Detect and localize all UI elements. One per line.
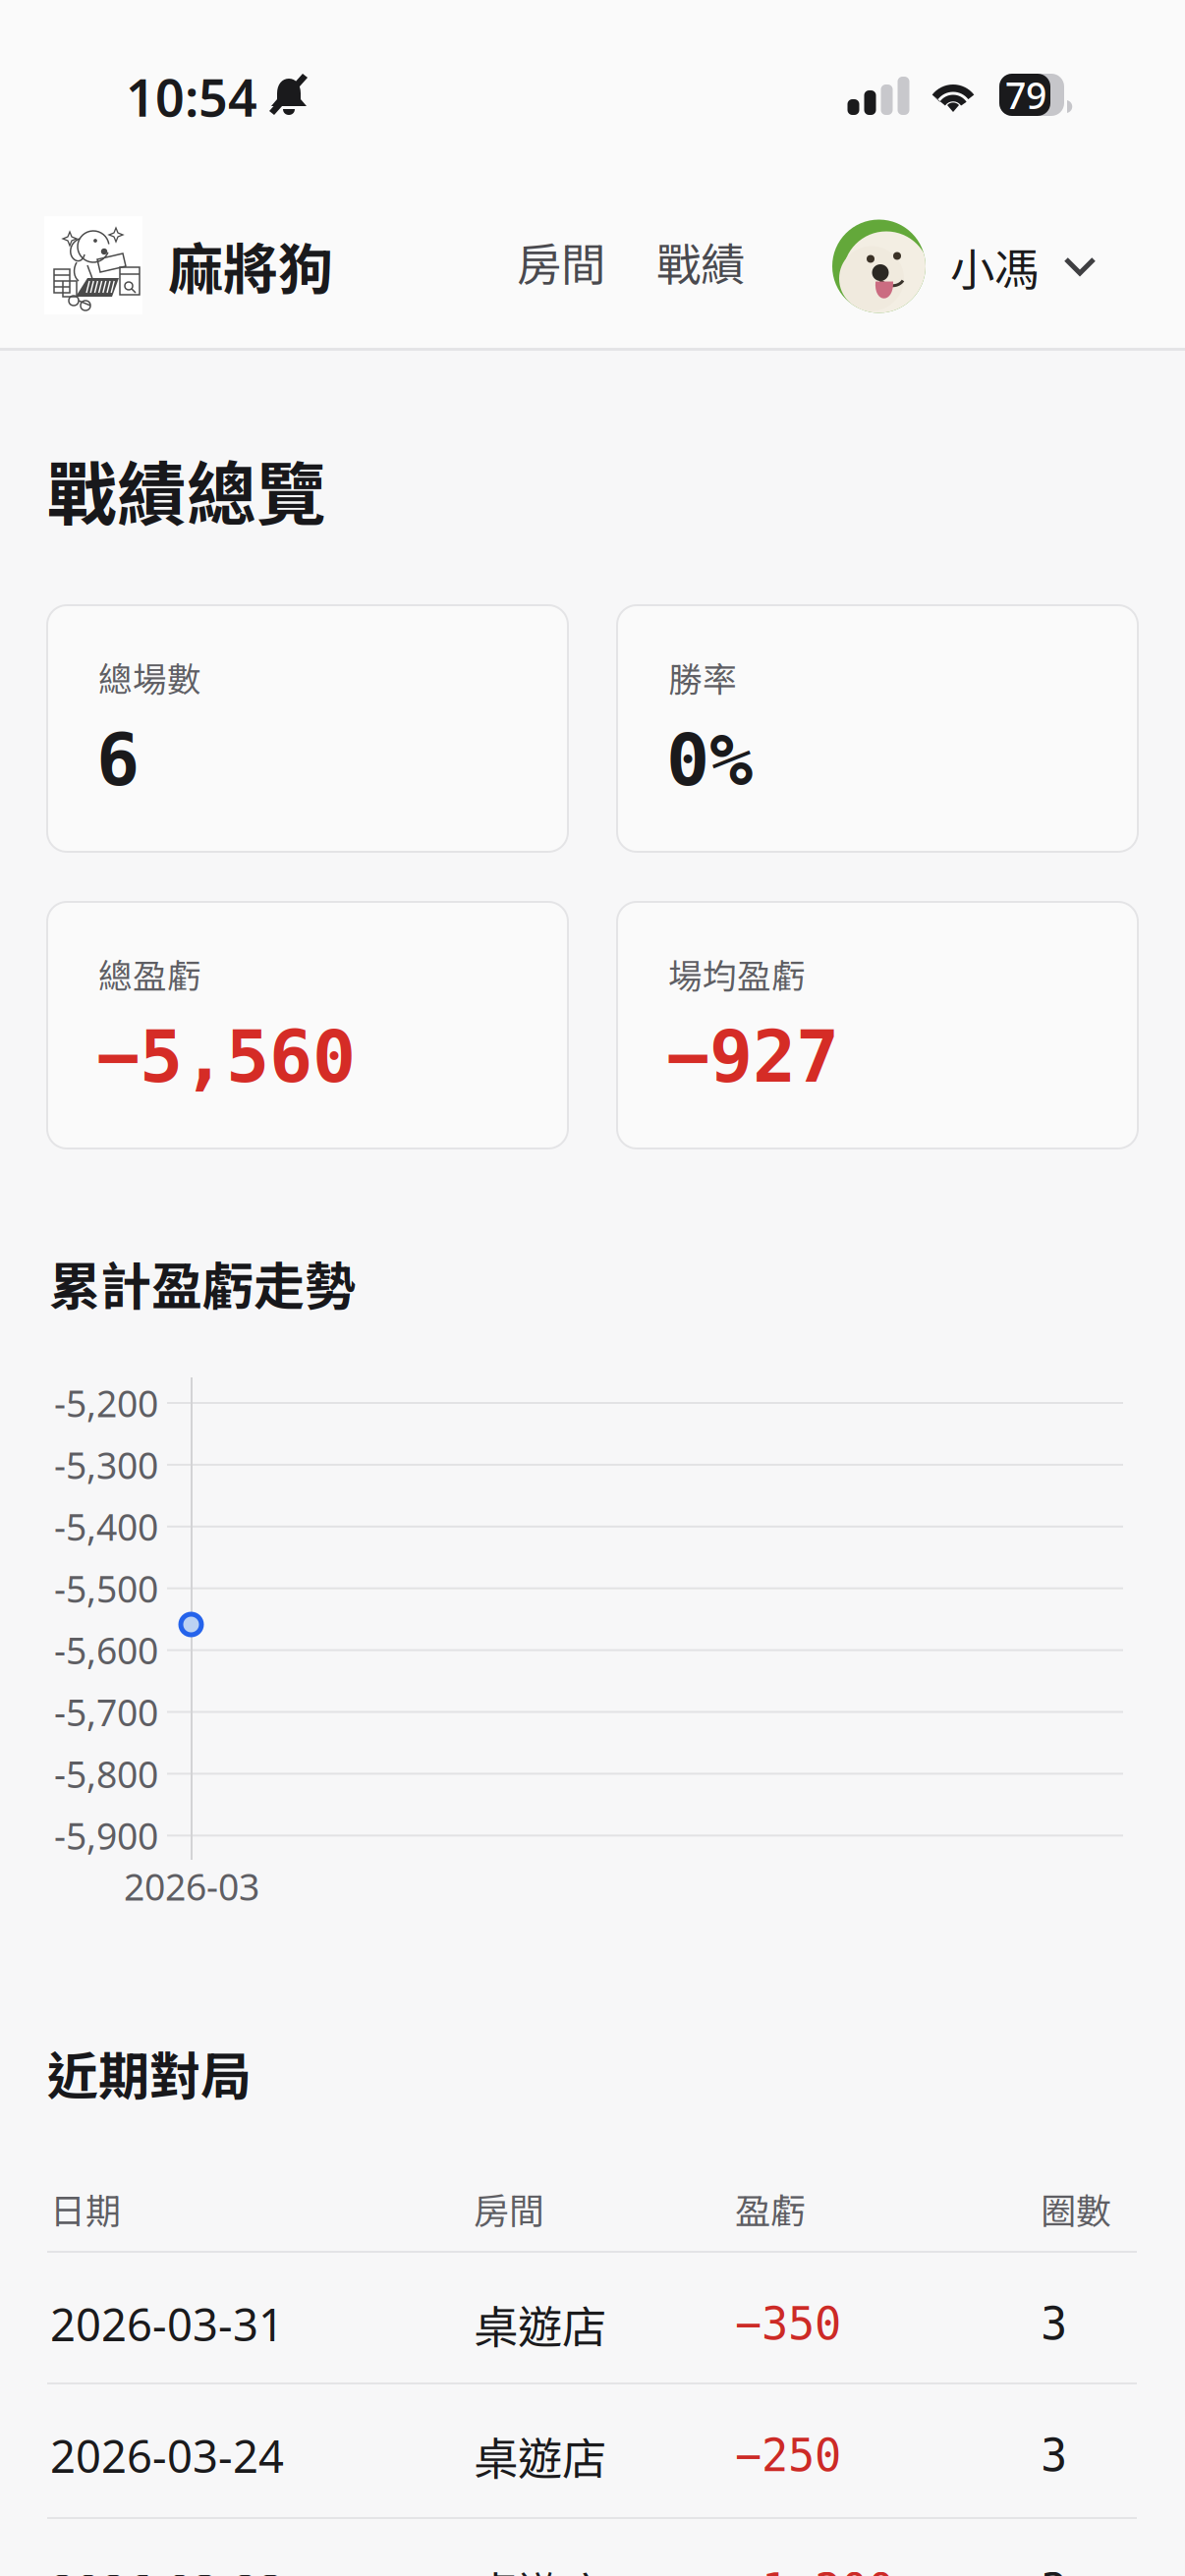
staticText: 79: [1005, 70, 1046, 119]
staticText: 近期對局: [47, 2036, 252, 2110]
staticText: 3: [1041, 2565, 1067, 2576]
staticText: 桌遊店: [474, 2558, 606, 2576]
staticText: −5,560: [96, 1016, 356, 1098]
staticText: 總場數: [98, 652, 201, 702]
staticText: 桌遊店: [474, 2292, 606, 2356]
staticText: 圈數: [1041, 2183, 1111, 2234]
staticText: 0%: [666, 719, 753, 801]
staticText: -5,800: [54, 1749, 158, 1798]
staticText: 戰績: [656, 229, 745, 294]
staticText: 2026-03-31: [50, 2294, 284, 2354]
staticText: 2026-03-23: [50, 2561, 284, 2576]
staticText: -5,300: [54, 1440, 158, 1489]
staticText: 桌遊店: [474, 2423, 606, 2488]
staticText: −250: [735, 2430, 841, 2481]
staticText: -5,900: [54, 1811, 158, 1860]
staticText: 3: [1041, 2430, 1067, 2481]
button[interactable]: 戰績: [653, 212, 748, 310]
staticText: -5,400: [54, 1502, 158, 1551]
staticText: 3: [1041, 2299, 1067, 2349]
staticText: 日期: [50, 2183, 121, 2234]
staticText: 2026-03-24: [50, 2426, 284, 2485]
staticText: 2026-03: [124, 1862, 259, 1911]
staticText: 盈虧: [735, 2183, 806, 2234]
staticText: 麻將狗: [168, 225, 333, 305]
staticText: 6: [96, 719, 140, 801]
staticText: −1,200: [735, 2565, 894, 2576]
staticText: -5,700: [54, 1688, 158, 1736]
staticText: 房間: [474, 2183, 544, 2234]
staticText: 場均盈虧: [668, 949, 806, 998]
button[interactable]: 房間: [514, 212, 608, 310]
button[interactable]: 小馮: [832, 217, 1098, 315]
staticText: 戰績總覽: [47, 439, 326, 540]
staticText: 房間: [517, 229, 605, 294]
staticText: -5,500: [54, 1564, 158, 1613]
staticText: 累計盈虧走勢: [49, 1246, 356, 1320]
staticText: 小馮: [950, 234, 1039, 298]
staticText: -5,200: [54, 1379, 158, 1427]
staticText: −927: [666, 1016, 839, 1098]
staticText: 10:54: [126, 63, 257, 131]
staticText: −350: [735, 2299, 841, 2349]
staticText: 勝率: [668, 652, 737, 702]
staticText: -5,600: [54, 1626, 158, 1674]
button[interactable]: 麻將狗: [44, 216, 345, 314]
staticText: 總盈虧: [98, 949, 201, 998]
